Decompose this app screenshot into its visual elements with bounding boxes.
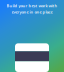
staticText: everyone in one place bbox=[11, 9, 52, 15]
staticText: Build your best work with bbox=[6, 3, 57, 8]
